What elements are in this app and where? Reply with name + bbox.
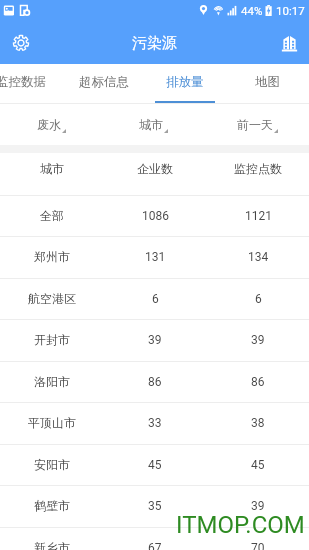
staticText: 1086 (142, 209, 169, 223)
staticText: 131 (145, 250, 166, 264)
staticText: 39 (251, 333, 265, 347)
staticText: 6 (152, 292, 159, 306)
button[interactable]: 洛阳市 (0, 361, 309, 402)
staticText: 全部 (40, 208, 64, 223)
button[interactable]: 超标信息 (68, 64, 140, 104)
button[interactable]: 城市 (106, 105, 196, 146)
staticText: 洛阳市 (34, 374, 70, 389)
staticText: 38 (251, 416, 265, 430)
staticText: 10:17 (276, 4, 305, 17)
staticText: 监控点数 (234, 161, 282, 176)
button[interactable]: 地图 (231, 64, 303, 104)
button[interactable]: 新乡市 (0, 527, 309, 550)
staticText: 45 (251, 458, 265, 472)
staticText: 郑州市 (34, 249, 70, 264)
staticText: 超标信息 (79, 74, 129, 90)
button[interactable]: 航空港区 (0, 278, 309, 319)
staticText: 平顶山市 (28, 415, 76, 430)
staticText: 33 (148, 416, 162, 430)
staticText: 排放量 (166, 74, 204, 90)
staticText: 35 (148, 499, 162, 513)
staticText: 监控数据 (0, 74, 46, 90)
staticText: 6 (255, 292, 262, 306)
staticText: 鹤壁市 (34, 498, 70, 513)
button[interactable]: 郑州市 (0, 236, 309, 277)
staticText: 城市 (139, 117, 163, 132)
staticText: 39 (148, 333, 162, 347)
button[interactable]: 监控数据 (0, 64, 57, 104)
button[interactable]: 全部 (0, 195, 309, 236)
staticText: 86 (148, 375, 162, 389)
staticText: 城市 (40, 161, 64, 176)
staticText: 1121 (245, 209, 272, 223)
button[interactable]: 平顶山市 (0, 402, 309, 443)
staticText: 地图 (255, 74, 280, 90)
button[interactable]: Settings (5, 27, 37, 59)
staticText: 86 (251, 375, 265, 389)
staticText: 航空港区 (28, 291, 76, 306)
staticText: 废水 (37, 117, 61, 132)
button[interactable]: 鹤壁市 (0, 485, 309, 526)
staticText: 开封市 (34, 332, 70, 347)
staticText: 污染源 (132, 34, 177, 53)
staticText: 67 (148, 541, 162, 550)
staticText: 45 (148, 458, 162, 472)
button[interactable]: 安阳市 (0, 444, 309, 485)
button[interactable]: 排放量 (149, 64, 221, 104)
staticText: 70 (251, 541, 265, 550)
button[interactable]: 废水 (4, 105, 94, 146)
button[interactable]: 前一天 (210, 105, 300, 146)
button[interactable]: Enterprises (273, 27, 305, 59)
staticText: 前一天 (237, 117, 273, 132)
staticText: 安阳市 (34, 457, 70, 472)
staticText: 44% (241, 4, 263, 17)
staticText: 企业数 (137, 161, 173, 176)
staticText: 134 (248, 250, 269, 264)
staticText: 新乡市 (34, 540, 70, 550)
staticText: ITMOP.COM (176, 511, 305, 539)
staticText: 39 (251, 499, 265, 513)
button[interactable]: 开封市 (0, 319, 309, 360)
